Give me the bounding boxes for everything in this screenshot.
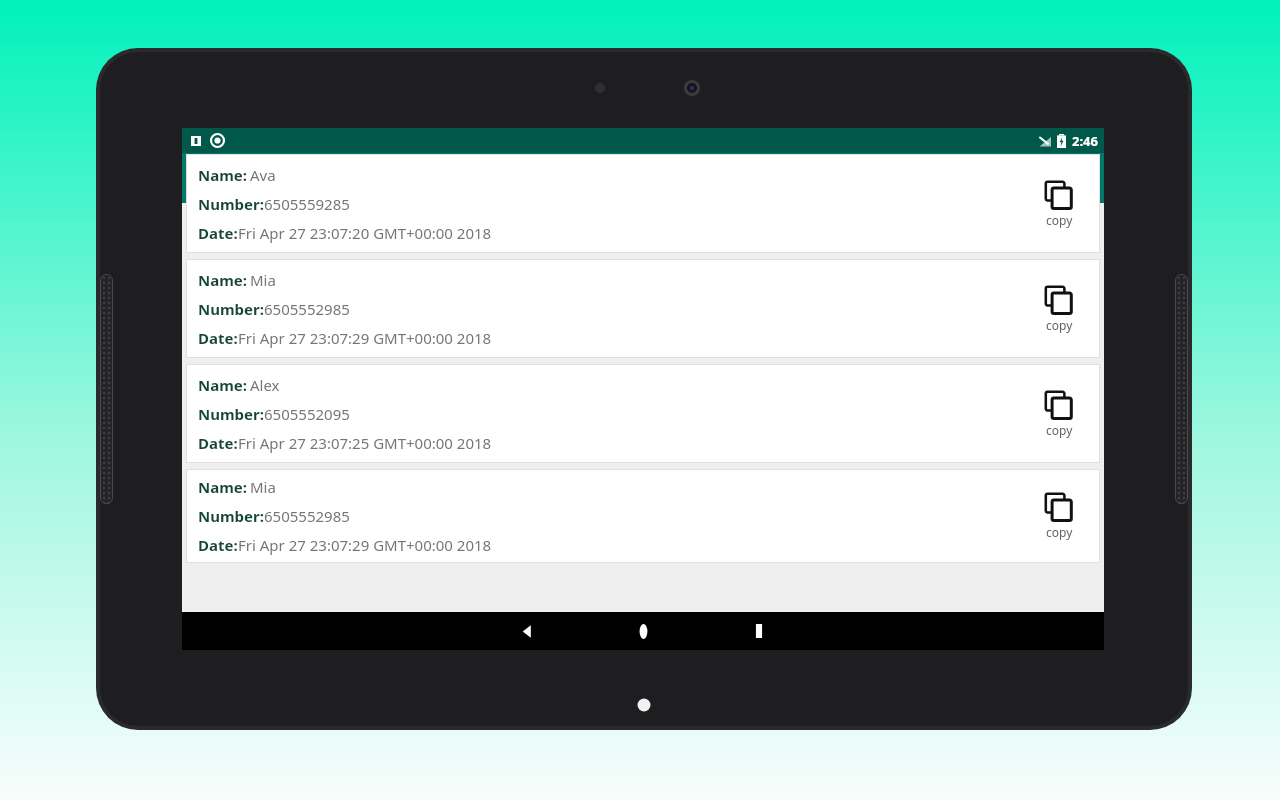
staticText: 6505552985 <box>264 506 350 526</box>
button[interactable]: Back <box>194 158 234 198</box>
staticText: 2:46 <box>1072 132 1098 150</box>
staticText: recover call logs history <box>248 165 458 191</box>
button[interactable]: copy <box>1040 488 1078 544</box>
staticText: Date: <box>198 328 238 348</box>
button[interactable]: Name: <box>186 469 1100 563</box>
staticText: Mia <box>250 270 276 290</box>
staticText: Mia <box>250 477 276 497</box>
staticText: Date: <box>198 433 238 453</box>
staticText: Fri Apr 27 23:07:25 GMT+00:00 2018 <box>238 433 492 453</box>
staticText: copy <box>1046 212 1073 228</box>
staticText: Ava <box>250 165 276 185</box>
staticText: copy <box>1046 317 1073 333</box>
staticText: Fri Apr 27 23:07:29 GMT+00:00 2018 <box>238 328 492 348</box>
staticText: Name: <box>198 165 247 185</box>
staticText: Number: <box>198 506 264 526</box>
button[interactable]: copy <box>1040 281 1078 337</box>
staticText: Name: <box>198 375 247 395</box>
button[interactable]: copy <box>1040 176 1078 232</box>
staticText: 6505559285 <box>264 194 350 214</box>
staticText: 6505552095 <box>264 404 350 424</box>
staticText: Date: <box>198 223 238 243</box>
staticText: Alex <box>250 375 280 395</box>
staticText: Name: <box>198 477 247 497</box>
button[interactable]: Name: <box>186 259 1100 358</box>
button[interactable]: Name: <box>186 154 1100 253</box>
staticText: copy <box>1046 524 1073 540</box>
staticText: Fri Apr 27 23:07:20 GMT+00:00 2018 <box>238 223 492 243</box>
button[interactable]: Recents <box>735 612 783 650</box>
staticText: 6505552985 <box>264 299 350 319</box>
staticText: Number: <box>198 299 264 319</box>
staticText: Number: <box>198 404 264 424</box>
staticText: Number: <box>198 194 264 214</box>
button[interactable]: Back <box>503 612 551 650</box>
staticText: Date: <box>198 535 238 555</box>
staticText: Fri Apr 27 23:07:29 GMT+00:00 2018 <box>238 535 492 555</box>
button[interactable]: Name: <box>186 364 1100 463</box>
staticText: Name: <box>198 270 247 290</box>
staticText: copy <box>1046 422 1073 438</box>
button[interactable]: Home <box>619 612 667 650</box>
button[interactable]: copy <box>1040 386 1078 442</box>
